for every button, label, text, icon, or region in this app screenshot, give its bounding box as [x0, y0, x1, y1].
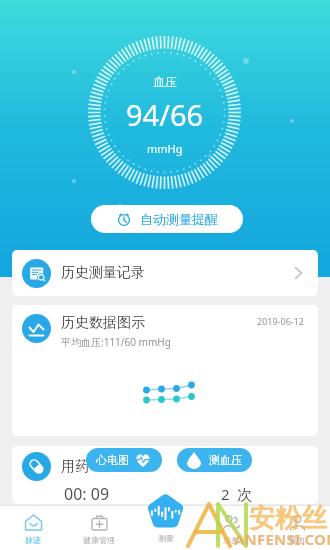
- button[interactable]: 脉迹: [0, 512, 66, 545]
- staticText: 血压: [153, 74, 177, 89]
- button[interactable]: 亲友: [198, 512, 264, 545]
- staticText: 历史测量记录: [61, 264, 145, 282]
- button[interactable]: 健康管理: [66, 512, 132, 545]
- button[interactable]: 历史数据图示: [12, 305, 318, 436]
- staticText: 安粉丝: [249, 502, 327, 535]
- staticText: 健康管理: [83, 535, 115, 545]
- button[interactable]: 用药: [12, 446, 318, 504]
- staticText: 00: 09: [64, 483, 110, 504]
- staticText: 测血压: [209, 453, 242, 467]
- button[interactable]: 测量: [146, 493, 185, 543]
- staticText: 脉迹: [25, 535, 41, 545]
- staticText: mmHg: [147, 141, 183, 156]
- staticText: 心电图: [96, 453, 129, 467]
- button[interactable]: 历史测量记录: [12, 250, 318, 296]
- staticText: 自动测量提醒: [140, 211, 218, 227]
- button[interactable]: 我的: [264, 512, 330, 545]
- staticText: 94/66: [126, 95, 204, 134]
- staticText: ANFENSI.COM: [234, 529, 330, 549]
- staticText: 用药: [61, 458, 89, 476]
- staticText: 2 次: [221, 484, 253, 504]
- staticText: 2019-06-12: [257, 315, 304, 327]
- staticText: 亲友: [223, 535, 239, 545]
- staticText: 测量: [158, 533, 174, 543]
- button[interactable]: 自动测量提醒: [91, 205, 243, 233]
- staticText: 平均血压:111/60 mmHg: [61, 335, 171, 349]
- button[interactable]: 心电图: [86, 448, 162, 472]
- staticText: 我的: [289, 535, 305, 545]
- button[interactable]: 测血压: [177, 448, 252, 472]
- staticText: 历史数据图示: [61, 314, 145, 332]
